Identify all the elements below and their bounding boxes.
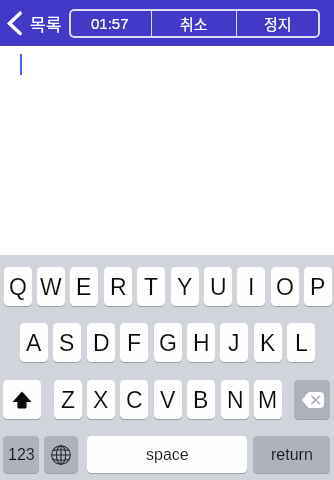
button[interactable]: H [187, 323, 215, 364]
staticText: A [26, 330, 42, 356]
staticText: M [258, 387, 278, 413]
button[interactable]: Q [4, 267, 32, 308]
staticText: S [59, 330, 75, 356]
other: Back [0, 0, 26, 46]
staticText: I [248, 274, 255, 300]
button[interactable]: space [87, 436, 247, 475]
button[interactable]: B [187, 380, 215, 421]
staticText: J [228, 330, 240, 356]
button[interactable]: L [287, 323, 315, 364]
staticText: V [160, 387, 176, 413]
staticText: F [127, 330, 142, 356]
button[interactable]: C [120, 380, 148, 421]
button[interactable]: U [204, 267, 232, 308]
staticText: T [144, 274, 159, 300]
button[interactable]: D [87, 323, 115, 364]
button[interactable]: X [87, 380, 115, 421]
staticText: C [126, 387, 143, 413]
button[interactable]: M [254, 380, 282, 421]
staticText: 정지 [264, 13, 292, 35]
button[interactable]: Shift [3, 380, 41, 421]
button[interactable]: N [221, 380, 249, 421]
staticText: P [310, 274, 326, 300]
button[interactable]: I [237, 267, 265, 308]
staticText: L [295, 330, 308, 356]
staticText: 목록 [30, 11, 62, 36]
button[interactable]: return [253, 436, 330, 475]
button[interactable]: 취소 [152, 9, 236, 38]
button[interactable]: 123 [3, 436, 39, 475]
staticText: 123 [8, 446, 35, 464]
staticText: space [146, 446, 189, 464]
button[interactable]: 정지 [237, 9, 319, 38]
button[interactable]: V [154, 380, 182, 421]
button[interactable]: Next keyboard [44, 436, 78, 475]
staticText: 취소 [180, 13, 208, 35]
staticText: O [276, 274, 294, 300]
staticText: Q [9, 274, 27, 300]
button[interactable]: S [53, 323, 81, 364]
staticText: return [271, 446, 313, 464]
button[interactable]: Back [0, 0, 66, 46]
staticText: W [40, 274, 62, 300]
staticText: 01:57 [91, 15, 129, 32]
button[interactable]: Backspace [294, 380, 330, 421]
staticText: X [93, 387, 109, 413]
button[interactable]: W [37, 267, 65, 308]
staticText: E [76, 274, 92, 300]
staticText: Z [61, 387, 76, 413]
button[interactable]: 01:57 [69, 9, 151, 38]
button[interactable]: G [154, 323, 182, 364]
staticText: R [110, 274, 127, 300]
staticText: U [210, 274, 227, 300]
button[interactable]: Y [171, 267, 199, 308]
button[interactable]: O [271, 267, 299, 308]
staticText: Y [177, 274, 193, 300]
button[interactable]: F [120, 323, 148, 364]
button[interactable]: P [304, 267, 332, 308]
staticText: K [260, 330, 276, 356]
staticText: G [159, 330, 177, 356]
button[interactable]: A [20, 323, 48, 364]
button[interactable]: K [254, 323, 282, 364]
staticText: H [193, 330, 210, 356]
button[interactable]: Z [54, 380, 82, 421]
button[interactable]: E [70, 267, 98, 308]
staticText: N [227, 387, 244, 413]
staticText: D [93, 330, 110, 356]
button[interactable]: T [137, 267, 165, 308]
staticText: B [193, 387, 209, 413]
button[interactable]: R [104, 267, 132, 308]
button[interactable]: J [220, 323, 248, 364]
